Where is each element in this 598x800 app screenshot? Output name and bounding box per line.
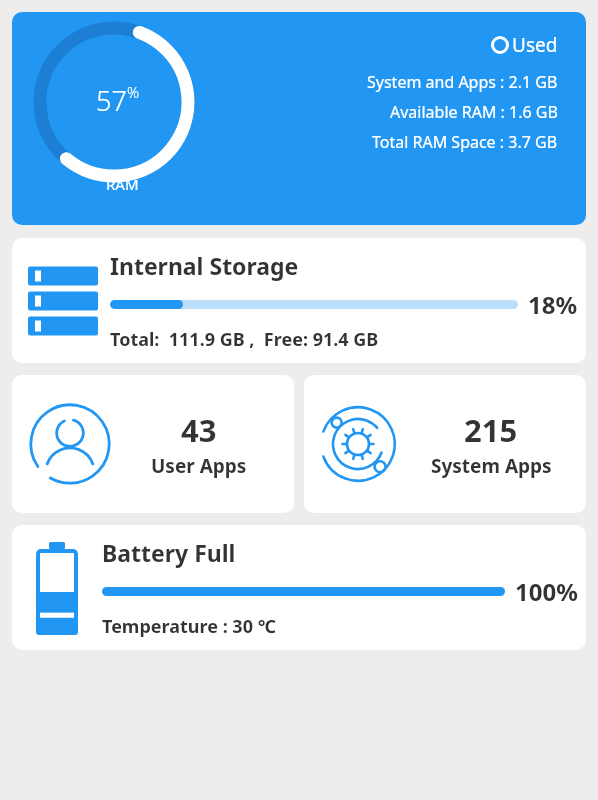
- button[interactable]: Used: [491, 32, 558, 58]
- staticText: Battery Full: [102, 537, 236, 568]
- button[interactable]: 43: [12, 375, 294, 513]
- staticText: 18%: [528, 288, 578, 321]
- staticText: System and Apps : 2.1 GB: [367, 71, 558, 93]
- staticText: Temperature : 30 ℃: [102, 614, 276, 639]
- staticText: RAM: [106, 174, 139, 194]
- staticText: 43: [181, 409, 217, 451]
- staticText: 57: [96, 82, 127, 119]
- button[interactable]: 215: [304, 375, 586, 513]
- staticText: User Apps: [151, 453, 247, 479]
- staticText: Used: [512, 32, 558, 58]
- staticText: %: [127, 82, 140, 102]
- staticText: System Apps: [431, 453, 552, 479]
- staticText: Available RAM : 1.6 GB: [390, 101, 558, 123]
- button[interactable]: Battery Full: [12, 525, 586, 650]
- staticText: 100%: [515, 575, 578, 608]
- button[interactable]: Internal Storage: [12, 238, 586, 363]
- button[interactable]: 57: [12, 12, 586, 225]
- staticText: Total RAM Space : 3.7 GB: [372, 131, 558, 153]
- staticText: Internal Storage: [110, 250, 299, 281]
- staticText: Total: 111.9 GB , Free: 91.4 GB: [110, 327, 379, 352]
- staticText: 215: [464, 409, 518, 451]
